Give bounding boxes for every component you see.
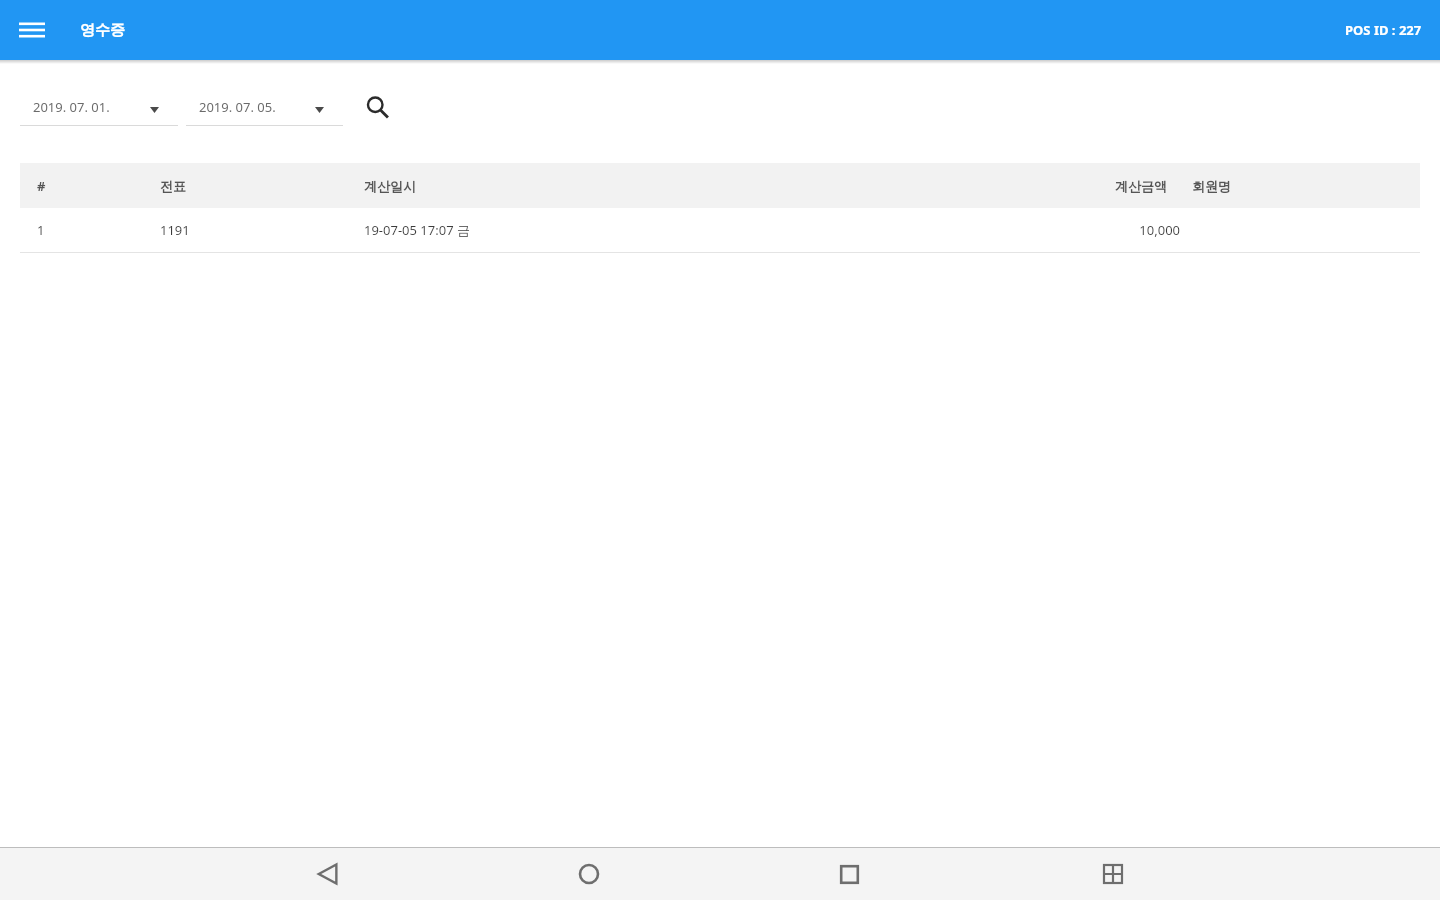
button[interactable]: Recent apps — [823, 848, 875, 900]
button[interactable]: Back — [302, 848, 354, 900]
button[interactable]: 2019. 07. 01. — [20, 82, 178, 132]
staticText: 1 — [37, 221, 45, 239]
staticText: POS ID : 227 — [1345, 21, 1422, 39]
staticText: 10,000 — [1139, 221, 1180, 239]
button[interactable]: Search — [355, 85, 399, 129]
button[interactable]: 2019. 07. 05. — [186, 82, 343, 132]
staticText: 계산금액 — [1115, 178, 1167, 194]
button[interactable]: Menu — [10, 8, 54, 52]
staticText: 1191 — [160, 221, 190, 239]
button[interactable]: All apps — [1087, 848, 1139, 900]
staticText: 전표 — [160, 178, 186, 194]
staticText: 19-07-05 17:07 금 — [364, 221, 470, 239]
staticText: 계산일시 — [364, 178, 416, 194]
staticText: 2019. 07. 01. — [33, 98, 110, 116]
staticText: # — [37, 177, 46, 195]
button[interactable]: 1 — [20, 208, 1420, 253]
staticText: 2019. 07. 05. — [199, 98, 276, 116]
button[interactable]: Home — [563, 848, 615, 900]
staticText: 영수증 — [80, 21, 125, 40]
staticText: 회원명 — [1192, 178, 1231, 194]
